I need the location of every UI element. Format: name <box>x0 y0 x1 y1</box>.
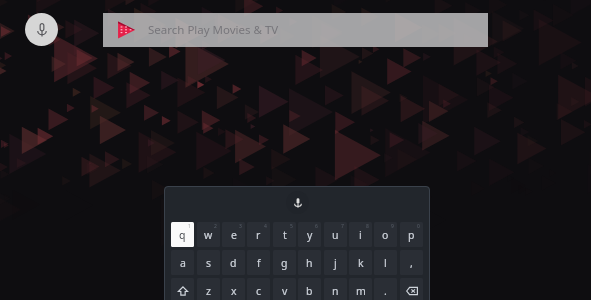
staticText: q <box>179 228 186 242</box>
staticText: u <box>332 228 339 242</box>
button[interactable]: Backspace <box>400 278 423 300</box>
staticText: z <box>206 284 211 298</box>
staticText: m <box>356 284 366 298</box>
button[interactable]: Voice search <box>25 13 58 46</box>
staticText: i <box>359 228 362 242</box>
staticText: 8 <box>366 223 369 230</box>
staticText: o <box>382 228 389 242</box>
button[interactable]: a <box>171 250 194 275</box>
button[interactable]: p <box>400 222 423 247</box>
staticText: w <box>204 228 213 242</box>
staticText: n <box>332 284 339 298</box>
staticText: 5 <box>290 223 293 230</box>
staticText: Search Play Movies & TV <box>148 22 279 38</box>
button[interactable]: b <box>298 278 321 300</box>
staticText: v <box>282 284 288 298</box>
button[interactable]: y <box>298 222 321 247</box>
staticText: c <box>256 284 262 298</box>
staticText: s <box>206 256 212 270</box>
staticText: x <box>231 284 237 298</box>
button[interactable]: o <box>374 222 397 247</box>
staticText: 3 <box>239 223 242 230</box>
button[interactable]: g <box>273 250 296 275</box>
button[interactable]: Shift <box>171 278 194 300</box>
button[interactable]: r <box>247 222 270 247</box>
button[interactable]: . <box>374 278 397 300</box>
button[interactable]: k <box>349 250 372 275</box>
button[interactable]: v <box>273 278 296 300</box>
staticText: 7 <box>341 223 344 230</box>
button[interactable]: e <box>222 222 245 247</box>
staticText: e <box>231 228 237 242</box>
button[interactable]: c <box>247 278 270 300</box>
staticText: 9 <box>391 223 394 230</box>
staticText: h <box>306 256 313 270</box>
staticText: 2 <box>214 223 217 230</box>
staticText: d <box>230 256 237 270</box>
staticText: t <box>283 228 287 242</box>
staticText: l <box>384 256 387 270</box>
staticText: k <box>358 256 364 270</box>
button[interactable]: , <box>400 250 423 275</box>
button[interactable]: w <box>197 222 220 247</box>
button[interactable]: i <box>349 222 372 247</box>
button[interactable]: m <box>349 278 372 300</box>
button[interactable]: j <box>324 250 347 275</box>
button[interactable]: u <box>324 222 347 247</box>
staticText: y <box>307 228 313 242</box>
staticText: 6 <box>315 223 318 230</box>
staticText: b <box>306 284 313 298</box>
button[interactable]: h <box>298 250 321 275</box>
button[interactable]: q <box>171 222 194 247</box>
staticText: a <box>180 256 186 270</box>
button[interactable]: Search Play Movies & TV <box>103 13 488 47</box>
staticText: 1 <box>188 223 191 230</box>
button[interactable]: Voice input <box>286 191 309 214</box>
staticText: , <box>410 256 413 270</box>
button[interactable]: t <box>273 222 296 247</box>
button[interactable]: s <box>197 250 220 275</box>
staticText: 4 <box>264 223 267 230</box>
button[interactable]: n <box>324 278 347 300</box>
staticText: p <box>408 228 415 242</box>
staticText: 0 <box>417 223 420 230</box>
button[interactable]: d <box>222 250 245 275</box>
button[interactable]: x <box>222 278 245 300</box>
button[interactable]: l <box>374 250 397 275</box>
staticText: . <box>384 284 387 298</box>
button[interactable]: z <box>197 278 220 300</box>
staticText: g <box>281 256 288 270</box>
button[interactable]: f <box>247 250 270 275</box>
staticText: r <box>256 228 261 242</box>
staticText: f <box>257 256 261 270</box>
staticText: j <box>334 256 337 270</box>
